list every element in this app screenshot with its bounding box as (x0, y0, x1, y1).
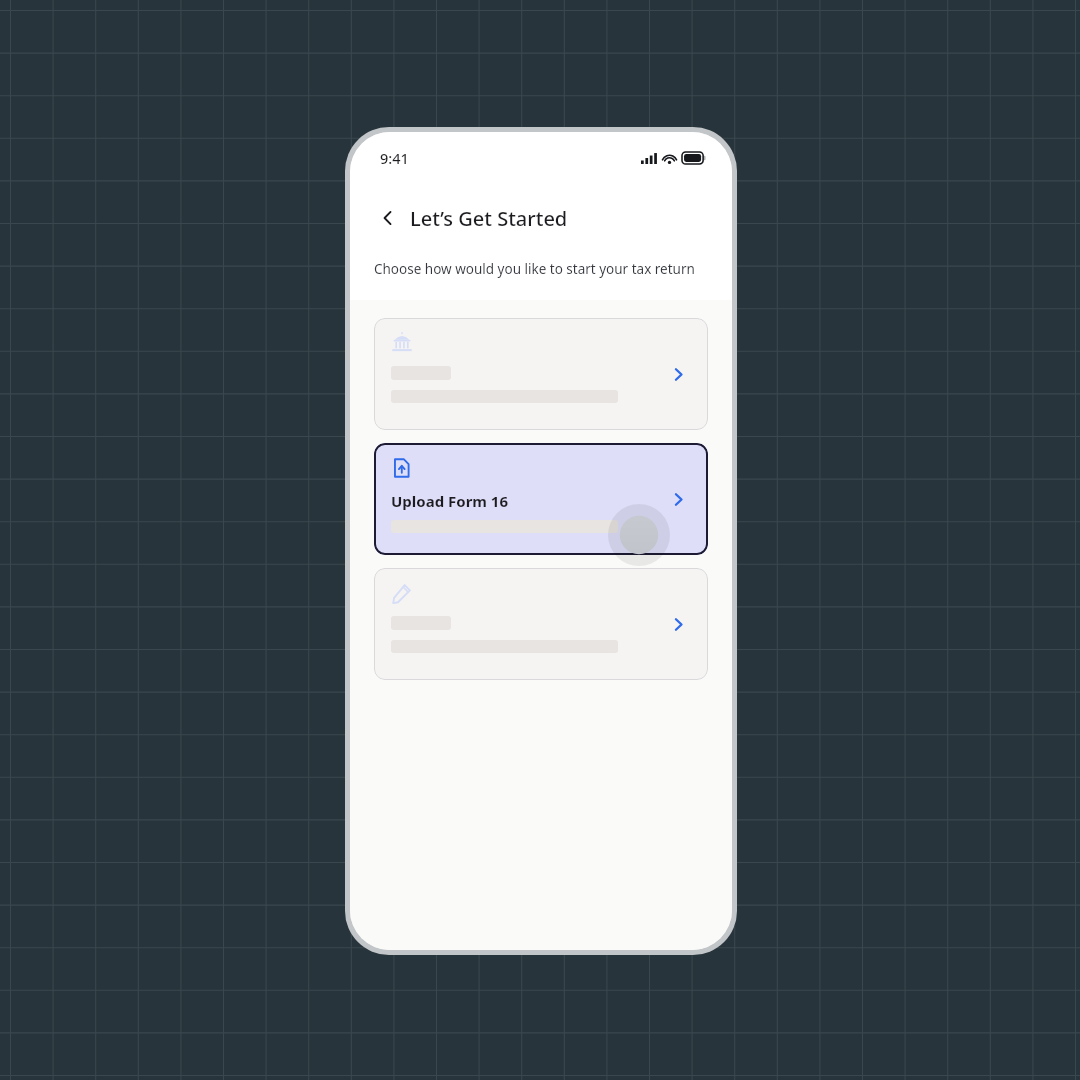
button[interactable]: Upload Form 16 (374, 443, 708, 555)
staticText: 9:41 (380, 148, 409, 168)
button[interactable]: Back (374, 204, 402, 232)
staticText: Let’s Get Started (410, 205, 568, 232)
staticText: Upload Form 16 (391, 491, 509, 511)
staticText: Choose how would you like to start your … (374, 260, 695, 278)
button[interactable] (374, 568, 708, 680)
button[interactable] (374, 318, 708, 430)
